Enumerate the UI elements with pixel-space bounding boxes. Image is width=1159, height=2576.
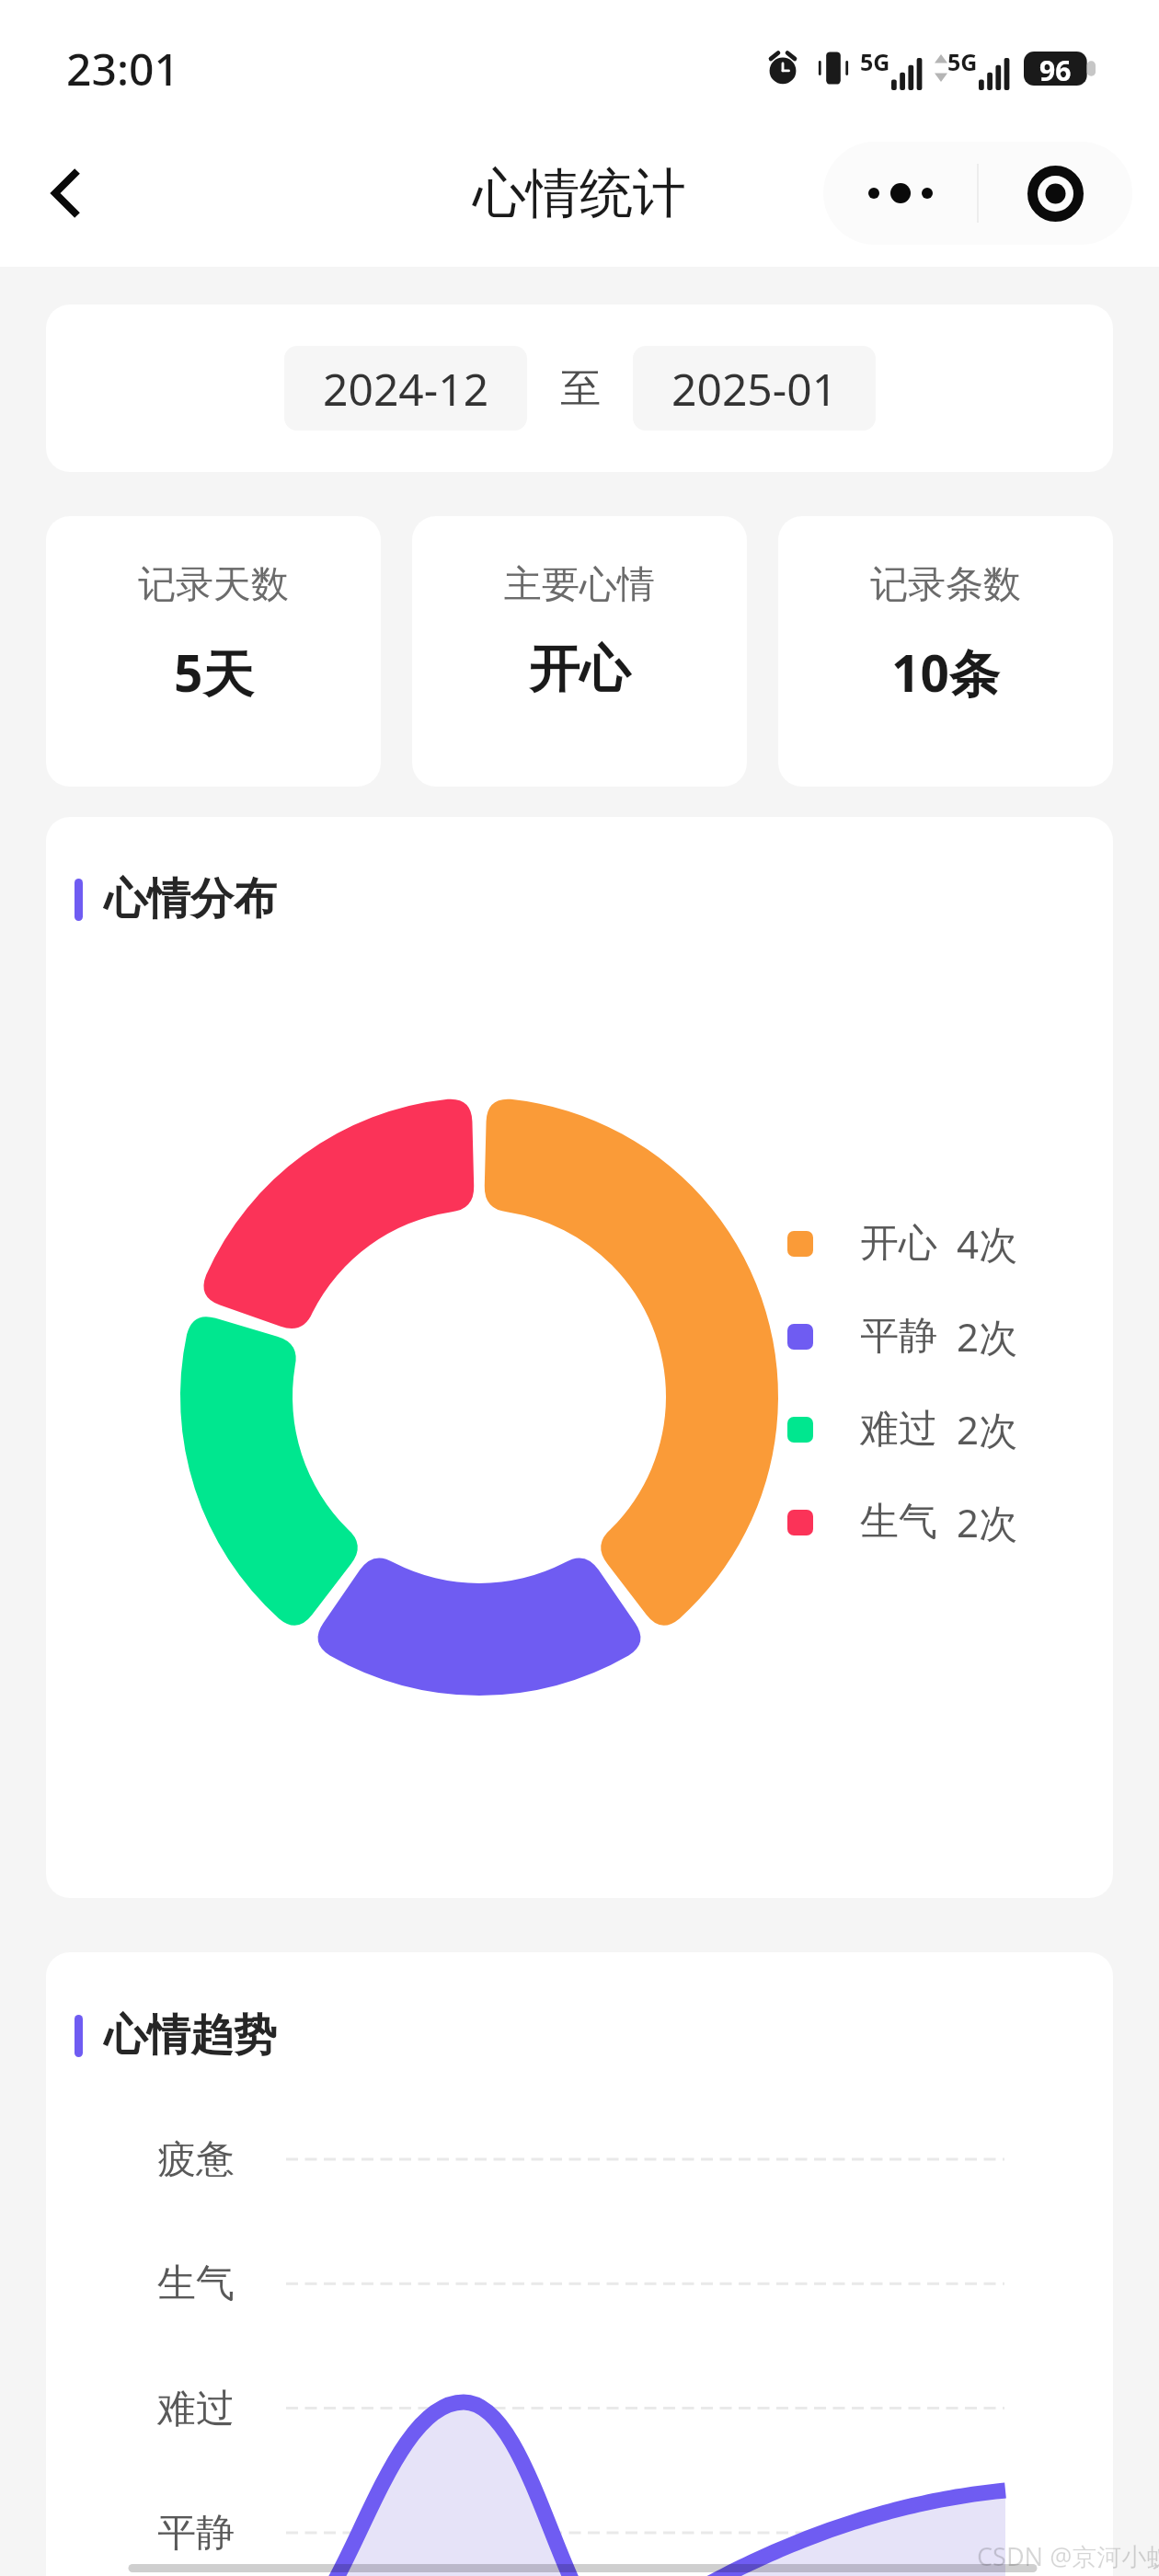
staticText: 2024-12 xyxy=(323,359,489,419)
staticText: 主要心情 xyxy=(504,561,655,609)
button[interactable]: 2024-12 xyxy=(284,346,527,431)
staticText: 心情统计 xyxy=(473,160,686,227)
staticText: 2次 xyxy=(957,1496,1018,1548)
staticText: 开心 xyxy=(860,1219,937,1268)
staticText: 疲惫 xyxy=(157,2135,235,2184)
staticText: 96 xyxy=(1039,52,1072,86)
staticText: 记录条数 xyxy=(870,561,1021,609)
button[interactable]: Back xyxy=(20,147,112,239)
staticText: 平静 xyxy=(157,2509,235,2558)
staticText: 心情趋势 xyxy=(104,2008,277,2063)
staticText: 2025-01 xyxy=(671,359,838,419)
staticText: 难过 xyxy=(157,2385,235,2433)
staticText: 至 xyxy=(560,363,601,414)
button[interactable]: 记录天数 xyxy=(46,516,381,787)
button[interactable]: 记录条数 xyxy=(778,516,1113,787)
staticText: 记录天数 xyxy=(138,561,289,609)
staticText: 难过 xyxy=(860,1405,937,1454)
staticText: 开心 xyxy=(529,638,630,701)
staticText: 5天 xyxy=(174,638,254,707)
button[interactable]: 主要心情 xyxy=(412,516,747,787)
staticText: 23:01 xyxy=(66,39,179,98)
staticText: 2次 xyxy=(957,1310,1018,1363)
staticText: 5G xyxy=(860,46,890,77)
button[interactable]: More options xyxy=(823,142,1132,245)
staticText: CSDN @京河小蚁 xyxy=(977,2539,1159,2573)
staticText: 生气 xyxy=(860,1498,937,1547)
staticText: 平静 xyxy=(860,1312,937,1361)
staticText: 2次 xyxy=(957,1403,1018,1455)
staticText: 生气 xyxy=(157,2260,235,2308)
staticText: 10条 xyxy=(891,638,1000,707)
button[interactable]: 2025-01 xyxy=(633,346,876,431)
staticText: 心情分布 xyxy=(104,872,277,926)
staticText: 5G xyxy=(947,46,978,77)
staticText: 4次 xyxy=(957,1217,1018,1270)
